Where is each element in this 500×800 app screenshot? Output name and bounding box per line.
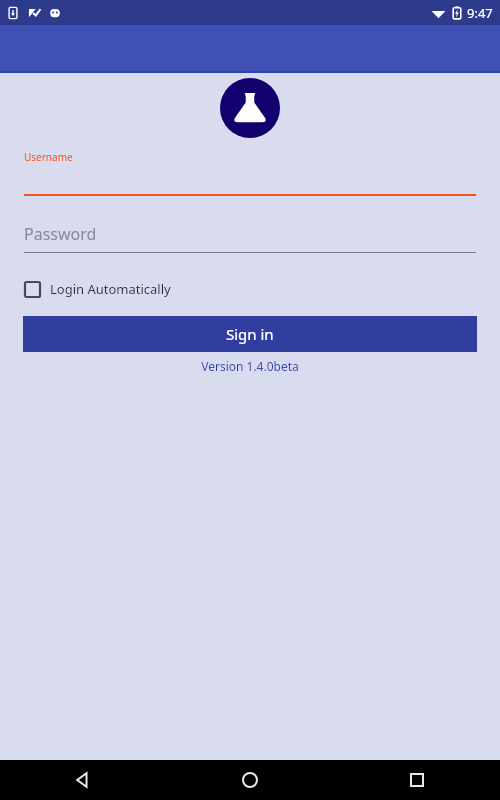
staticText: Password xyxy=(24,223,97,245)
button[interactable]: Sign in xyxy=(23,316,477,352)
button[interactable]: Login Automatically xyxy=(24,276,171,302)
button[interactable]: Back xyxy=(66,763,100,797)
staticText: Username xyxy=(24,150,73,164)
button[interactable]: Home xyxy=(233,763,267,797)
staticText: Sign in xyxy=(226,324,274,344)
button[interactable]: Password xyxy=(24,218,476,253)
button[interactable]: Username xyxy=(24,150,476,196)
staticText: Login Automatically xyxy=(50,280,171,298)
button[interactable]: Recent apps xyxy=(400,763,434,797)
staticText: 9:47 xyxy=(467,4,493,22)
button[interactable]: Version 1.4.0beta xyxy=(201,358,299,374)
